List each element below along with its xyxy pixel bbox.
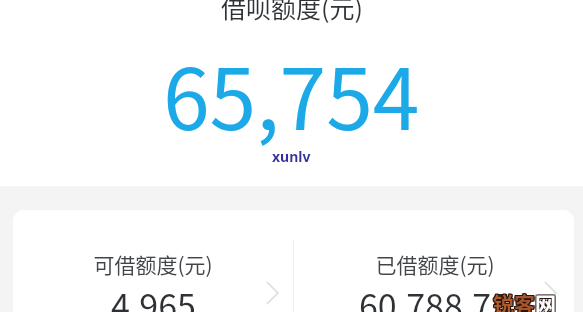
staticText: 网: [535, 289, 556, 312]
staticText: 可借额度(元): [93, 249, 213, 279]
staticText: 网: [534, 287, 555, 312]
staticText: 网: [535, 288, 556, 312]
staticText: 客: [513, 289, 534, 312]
other: View details: [544, 281, 557, 305]
staticText: 网: [534, 288, 555, 312]
staticText: 客: [514, 288, 535, 312]
staticText: 锐: [494, 288, 515, 312]
staticText: 锐: [492, 287, 513, 312]
staticText: 锐: [494, 287, 515, 312]
staticText: 锐: [492, 288, 513, 312]
staticText: 已借额度(元): [375, 249, 495, 279]
staticText: 网: [536, 288, 557, 312]
staticText: 60,788.75: [359, 280, 510, 312]
staticText: 客: [514, 287, 535, 312]
staticText: 锐: [494, 289, 515, 312]
staticText: 客: [515, 287, 536, 312]
staticText: 网: [536, 287, 557, 312]
staticText: 客: [515, 288, 536, 312]
staticText: 客: [515, 289, 536, 312]
staticText: 网: [534, 289, 555, 312]
staticText: 网: [536, 289, 557, 312]
staticText: 锐: [493, 288, 514, 312]
button[interactable]: 已借额度(元): [294, 210, 574, 312]
staticText: 锐: [492, 289, 513, 312]
other: View details: [266, 281, 279, 305]
staticText: 借呗额度(元): [221, 0, 363, 25]
staticText: 网: [535, 287, 556, 312]
staticText: 锐: [493, 289, 514, 312]
button[interactable]: 可借额度(元): [13, 210, 293, 312]
staticText: 客: [513, 287, 534, 312]
staticText: 客: [513, 288, 534, 312]
staticText: 客: [514, 289, 535, 312]
staticText: 65,754: [163, 33, 420, 155]
staticText: 4,965: [111, 280, 196, 312]
staticText: 锐: [493, 287, 514, 312]
staticText: xunlv: [272, 147, 311, 166]
